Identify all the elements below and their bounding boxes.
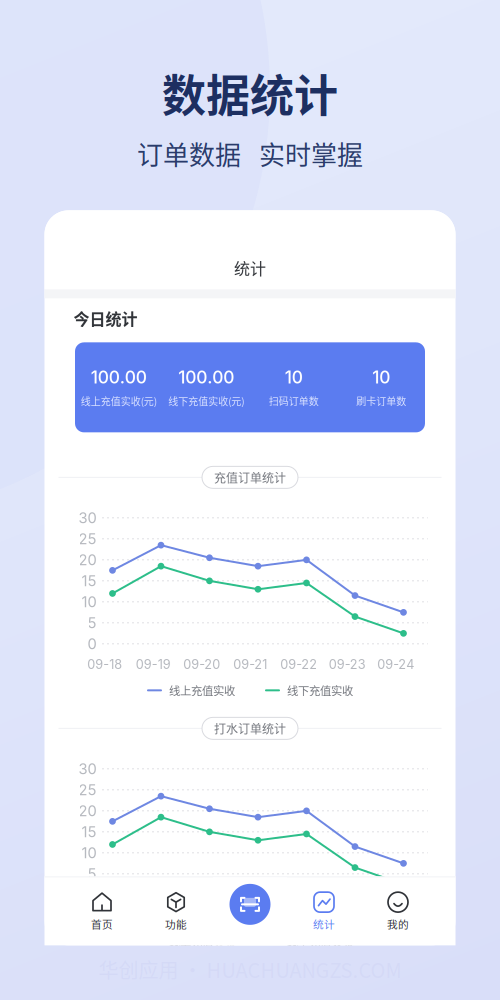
staticText: 统计 (313, 916, 335, 931)
staticText: 线上充值实收 (169, 682, 235, 699)
button[interactable]: Scan (226, 880, 274, 928)
staticText: 扫码订单数 (269, 394, 319, 408)
staticText: 09-24 (377, 908, 414, 923)
staticText: 25 (78, 781, 96, 799)
staticText: 0 (87, 635, 96, 653)
staticText: 09-20 (183, 657, 220, 672)
staticText: 25 (78, 530, 96, 548)
staticText: 09-22 (280, 657, 317, 672)
staticText: 线下充值实收(元) (168, 394, 244, 408)
staticText: 15 (81, 572, 96, 590)
staticText: 打水订单统计 (214, 720, 286, 737)
staticText: 09-20 (183, 908, 220, 923)
staticText: 线上充值实收(元) (81, 394, 157, 408)
staticText: 20 (78, 551, 96, 569)
staticText: 09-19 (136, 657, 171, 672)
staticText: 线上充值实收 (169, 933, 235, 950)
staticText: 100.00 (178, 367, 234, 388)
staticText: 10 (285, 367, 303, 388)
staticText: 充值订单统计 (214, 469, 286, 486)
button[interactable]: 功能 (139, 877, 213, 945)
staticText: 订单数据 实时掌握 (137, 135, 363, 172)
staticText: 09-18 (87, 908, 122, 923)
staticText: 10 (81, 844, 96, 862)
button[interactable]: 首页 (65, 877, 139, 945)
staticText: 10 (81, 593, 96, 611)
staticText: 10 (372, 367, 390, 388)
staticText: 首页 (91, 916, 113, 931)
staticText: 100.00 (91, 367, 147, 388)
staticText: 30 (78, 509, 96, 527)
staticText: 09-23 (329, 657, 366, 672)
staticText: 统计 (234, 256, 266, 279)
button[interactable]: 统计 (287, 877, 361, 945)
staticText: 线下充值实收 (287, 933, 353, 950)
staticText: 数据统计 (162, 61, 338, 125)
staticText: 09-22 (280, 908, 317, 923)
staticText: 09-19 (136, 908, 171, 923)
staticText: 0 (87, 886, 96, 904)
staticText: 20 (78, 802, 96, 820)
button[interactable]: 我的 (361, 877, 435, 945)
staticText: 线下充值实收 (287, 682, 353, 699)
staticText: 15 (81, 823, 96, 841)
staticText: 5 (87, 865, 96, 883)
staticText: 09-21 (233, 908, 267, 923)
staticText: 09-24 (377, 657, 414, 672)
staticText: 5 (87, 614, 96, 632)
staticText: 今日统计 (73, 307, 137, 330)
staticText: 09-23 (329, 908, 366, 923)
staticText: 09-21 (233, 657, 267, 672)
staticText: 功能 (165, 916, 187, 931)
staticText: 我的 (387, 916, 409, 931)
staticText: 刷卡订单数 (356, 394, 406, 408)
staticText: 09-18 (87, 657, 122, 672)
staticText: 30 (78, 760, 96, 778)
